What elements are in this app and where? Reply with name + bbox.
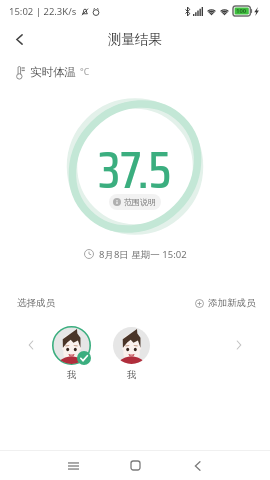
staticText: 我 — [127, 369, 137, 381]
button[interactable]: Back — [4, 24, 34, 54]
button[interactable]: Next member — [232, 338, 246, 352]
button[interactable]: Home — [117, 451, 153, 480]
staticText: 我 — [67, 369, 77, 381]
button[interactable]: Back — [179, 451, 215, 480]
button[interactable]: Previous member — [24, 338, 38, 352]
staticText: 37.5 — [98, 129, 172, 211]
button[interactable]: 添加新成员 — [195, 297, 256, 309]
staticText: 添加新成员 — [208, 297, 256, 309]
staticText: 15:02 | 22.3K/s — [9, 5, 77, 18]
staticText: 8月8日 星期一 15:02 — [99, 248, 187, 261]
staticText: 100 — [236, 7, 247, 15]
staticText: 实时体温 — [30, 65, 76, 79]
button[interactable]: Recent apps — [55, 451, 91, 480]
staticText: °C — [80, 66, 90, 78]
button[interactable]: 我 — [52, 326, 91, 381]
staticText: 测量结果 — [108, 31, 162, 48]
staticText: 选择成员 — [17, 297, 55, 309]
button[interactable]: 我 — [112, 326, 151, 381]
staticText: 范围说明 — [124, 197, 156, 207]
button[interactable]: 范围说明 — [109, 194, 161, 210]
